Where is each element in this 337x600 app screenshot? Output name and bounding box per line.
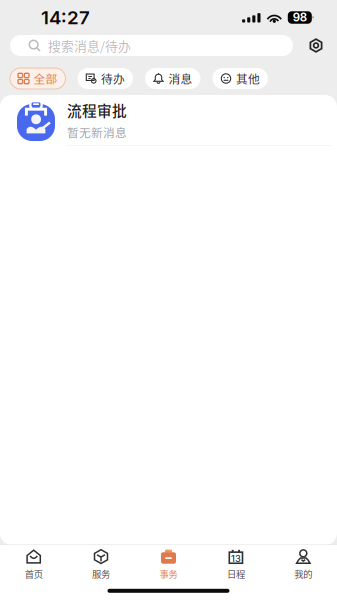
button[interactable]: 消息 <box>145 68 200 89</box>
staticText: 服务 <box>92 567 110 580</box>
button[interactable]: 服务 <box>67 548 135 582</box>
staticText: 暂无新消息 <box>67 124 127 141</box>
staticText: 搜索消息/待办 <box>48 36 131 55</box>
button[interactable]: 我的 <box>270 548 337 582</box>
staticText: 全部 <box>33 70 57 87</box>
button[interactable]: 流程审批 <box>0 95 337 146</box>
staticText: 首页 <box>25 567 43 580</box>
staticText: 其他 <box>236 70 260 87</box>
staticText: 14:27 <box>41 6 90 29</box>
button[interactable]: 搜索消息/待办 <box>10 35 293 56</box>
button[interactable]: 事务 <box>135 548 202 582</box>
staticText: 13 <box>231 553 241 564</box>
button[interactable]: 待办 <box>77 68 133 89</box>
staticText: 消息 <box>168 70 192 87</box>
button[interactable]: 其他 <box>212 68 268 89</box>
button[interactable]: 全部 <box>10 68 65 89</box>
button[interactable]: 扫一扫 <box>304 35 328 56</box>
staticText: 待办 <box>101 70 125 87</box>
button[interactable]: 首页 <box>0 548 67 582</box>
staticText: 事务 <box>159 567 177 580</box>
staticText: 我的 <box>294 567 312 580</box>
staticText: 98 <box>293 11 307 24</box>
staticText: 日程 <box>227 567 245 580</box>
button[interactable]: 13 <box>202 548 270 582</box>
staticText: 流程审批 <box>67 99 127 121</box>
